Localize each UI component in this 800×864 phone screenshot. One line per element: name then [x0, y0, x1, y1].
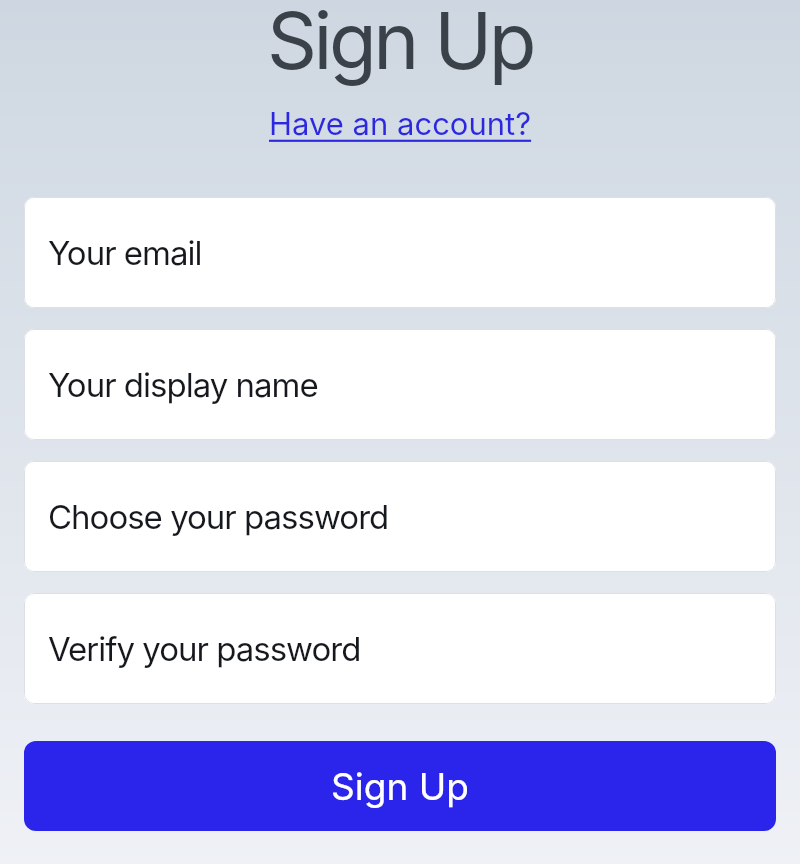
staticText: Choose your password	[48, 497, 389, 537]
button[interactable]: Sign Up	[24, 741, 776, 831]
button[interactable]: Have an account?	[269, 105, 532, 143]
staticText: Sign Up	[267, 0, 534, 87]
staticText: Have an account?	[269, 105, 532, 143]
button[interactable]: Your display name	[24, 329, 776, 440]
staticText: Your email	[48, 233, 202, 273]
staticText: Your display name	[48, 365, 318, 405]
button[interactable]: Verify your password	[24, 593, 776, 704]
staticText: Verify your password	[48, 629, 361, 669]
staticText: Sign Up	[331, 764, 469, 809]
button[interactable]: Your email	[24, 197, 776, 308]
button[interactable]: Choose your password	[24, 461, 776, 572]
